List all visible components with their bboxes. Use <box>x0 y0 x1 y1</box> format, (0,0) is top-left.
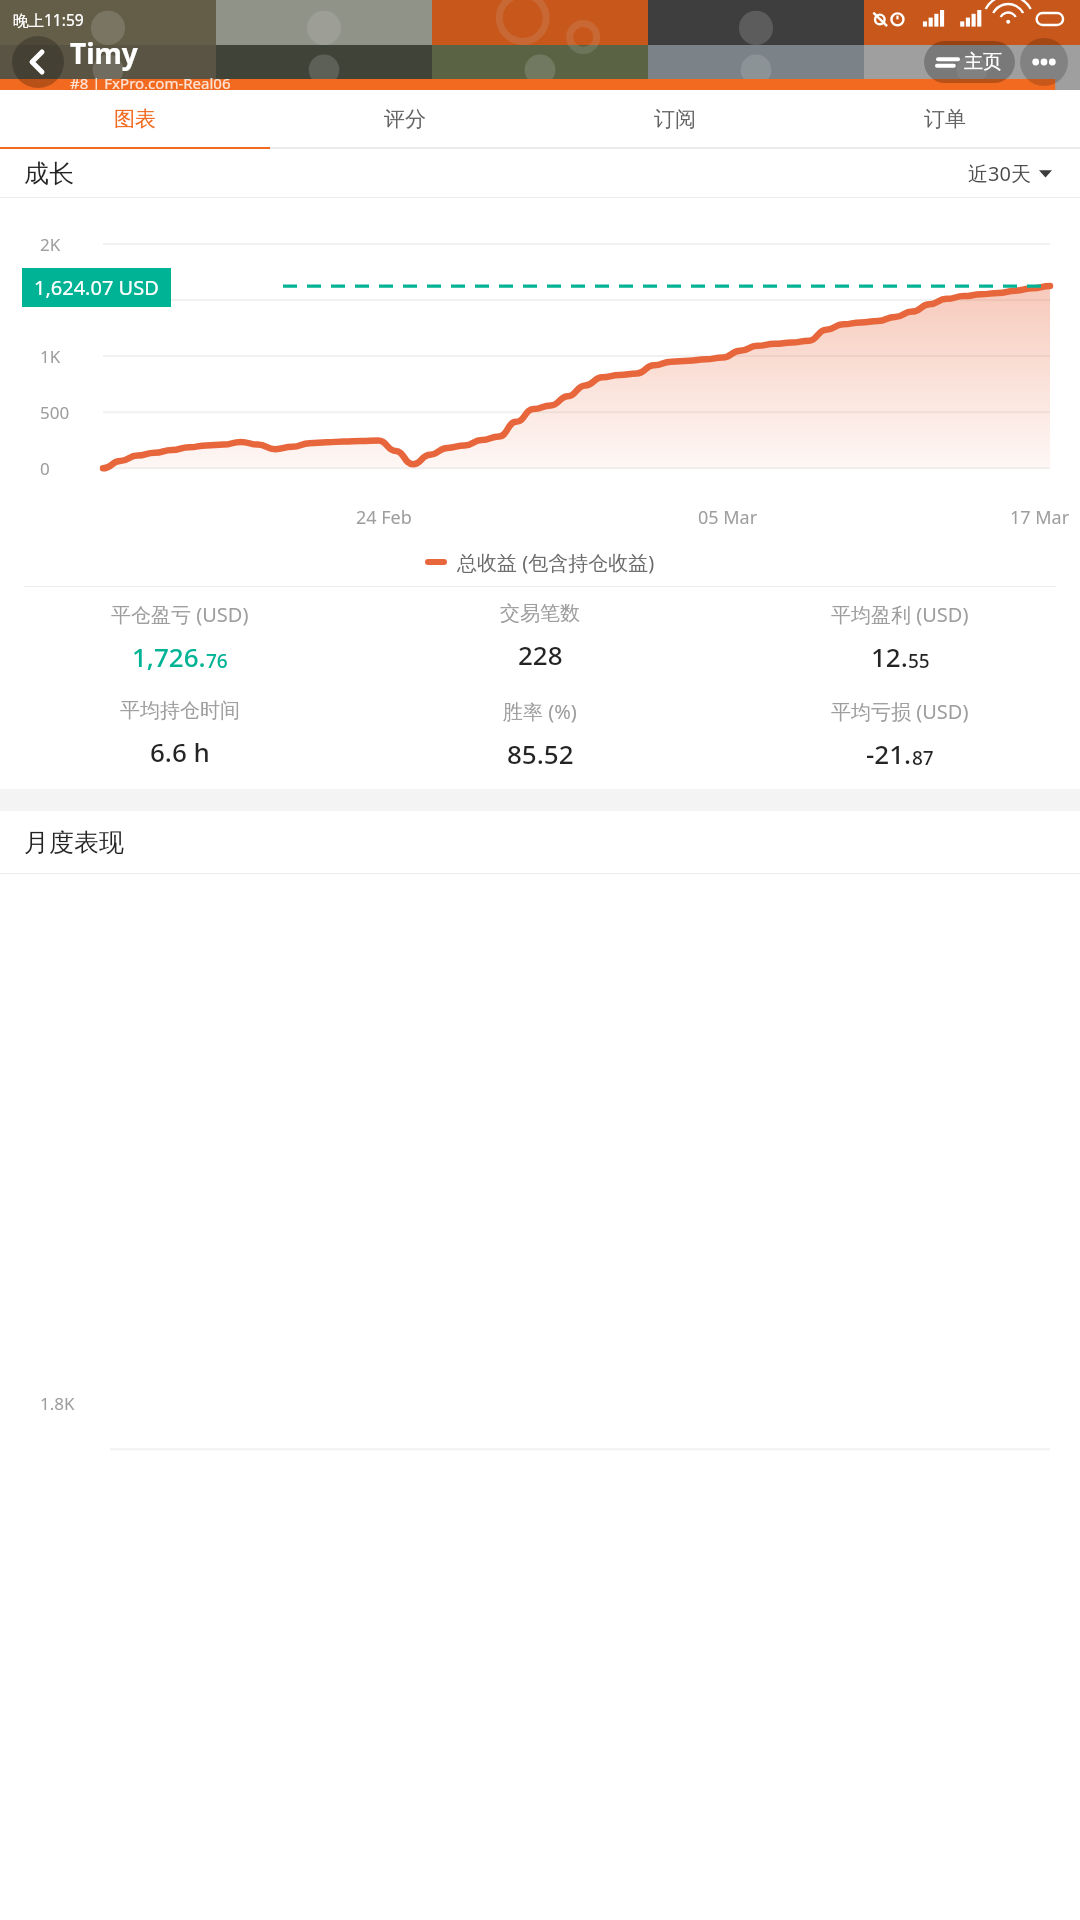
staticText: 1K <box>40 345 61 368</box>
button[interactable]: 订单 <box>810 90 1080 147</box>
staticText: 近30天 <box>968 160 1031 187</box>
staticText: 评分 <box>384 106 426 132</box>
button[interactable]: 评分 <box>270 90 540 147</box>
button[interactable]: 主页 <box>924 41 1015 83</box>
staticText: 500 <box>40 401 70 424</box>
staticText: 24 Feb <box>356 505 412 530</box>
staticText: 85.52 <box>507 736 574 771</box>
staticText: 228 <box>518 637 563 672</box>
button[interactable]: More options <box>1020 38 1068 86</box>
button[interactable]: 订阅 <box>540 90 810 147</box>
staticText: 55 <box>908 648 930 674</box>
staticText: 订阅 <box>654 106 696 132</box>
staticText: 交易笔数 <box>500 601 580 626</box>
button[interactable]: 近30天 <box>964 156 1056 191</box>
staticText: 12. <box>871 639 908 674</box>
staticText: 87 <box>912 745 934 771</box>
button[interactable]: Back <box>12 36 64 88</box>
staticText: 1,726. <box>132 639 206 674</box>
staticText: 05 Mar <box>698 505 758 530</box>
staticText: 胜率 (%) <box>503 698 577 725</box>
staticText: 图表 <box>114 106 156 132</box>
staticText: 平均亏损 (USD) <box>831 698 969 725</box>
staticText: 平均持仓时间 <box>120 698 240 723</box>
staticText: 0 <box>40 457 50 480</box>
staticText: 晚上11:59 <box>13 9 84 30</box>
staticText: 17 Mar <box>1010 505 1070 530</box>
staticText: 1.5K <box>40 289 75 312</box>
button[interactable]: 图表 <box>0 90 270 147</box>
staticText: 1.8K <box>40 1392 75 1415</box>
staticText: 2K <box>40 233 61 256</box>
staticText: Timy <box>70 34 138 72</box>
staticText: 1,624.07 USD <box>34 274 159 301</box>
staticText: #8 | FxPro.com-Real06 <box>70 73 231 90</box>
staticText: 76 <box>206 648 228 674</box>
staticText: 主页 <box>964 50 1002 74</box>
staticText: 6.6 h <box>150 734 210 769</box>
staticText: 月度表现 <box>24 827 124 858</box>
staticText: 成长 <box>24 158 74 189</box>
staticText: 平仓盈亏 (USD) <box>111 601 249 628</box>
staticText: 订单 <box>924 106 966 132</box>
staticText: -21. <box>866 736 912 771</box>
staticText: 平均盈利 (USD) <box>831 601 969 628</box>
staticText: 总收益 (包含持仓收益) <box>457 549 655 576</box>
